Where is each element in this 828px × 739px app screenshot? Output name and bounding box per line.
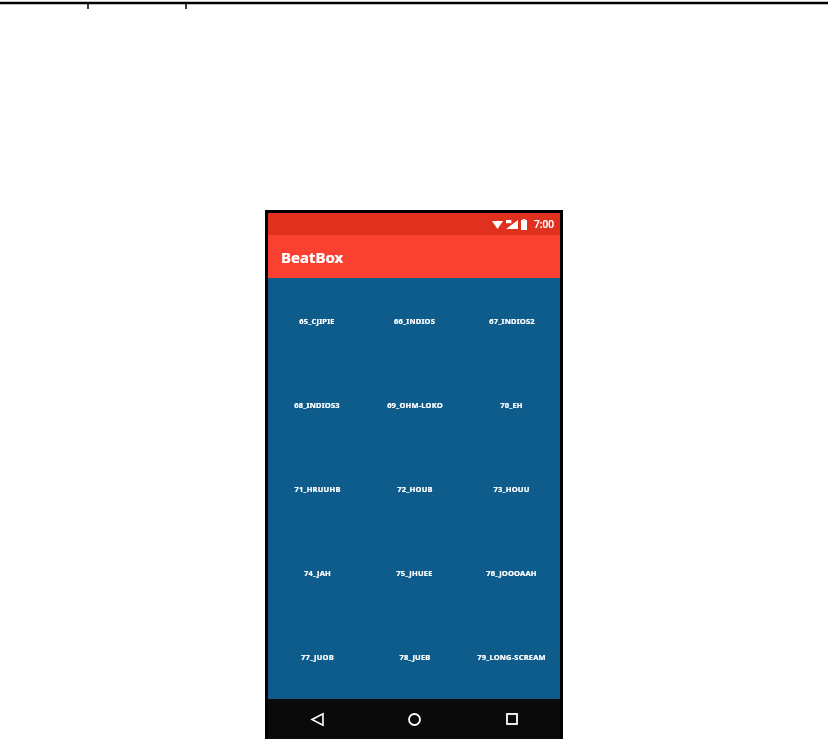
button[interactable]: 71_HRUUHB xyxy=(268,447,366,531)
button[interactable]: 67_INDIOS2 xyxy=(463,278,560,363)
staticText: 69_OHM-LOKO xyxy=(387,400,443,410)
staticText: 70_EH xyxy=(500,400,523,410)
staticText: 79_LONG-SCREAM xyxy=(477,652,546,662)
staticText: 77_JUOB xyxy=(301,652,334,662)
button[interactable]: Recent apps xyxy=(463,699,560,739)
button[interactable]: 77_JUOB xyxy=(268,615,366,699)
staticText: 66_INDIOS xyxy=(394,316,435,326)
button[interactable]: BeatBox xyxy=(268,235,560,278)
button[interactable]: Home xyxy=(366,699,463,739)
button[interactable]: 72_HOUB xyxy=(366,447,463,531)
button[interactable]: 68_INDIOS3 xyxy=(268,363,366,447)
staticText: BeatBox xyxy=(281,247,344,267)
staticText: 65_CJIPIE xyxy=(299,316,335,326)
button[interactable]: 78_JUEB xyxy=(366,615,463,699)
staticText: 72_HOUB xyxy=(397,484,433,494)
button[interactable]: 74_JAH xyxy=(268,531,366,615)
button[interactable]: 65_CJIPIE xyxy=(268,278,366,363)
button[interactable]: Back xyxy=(268,699,366,739)
staticText: 73_HOUU xyxy=(493,484,530,494)
staticText: 74_JAH xyxy=(304,568,331,578)
staticText: 68_INDIOS3 xyxy=(294,400,340,410)
staticText: 75_JHUEE xyxy=(396,568,433,578)
staticText: 76_JOOOAAH xyxy=(486,568,537,578)
staticText: 67_INDIOS2 xyxy=(489,316,535,326)
button[interactable]: 70_EH xyxy=(463,363,560,447)
button[interactable]: 73_HOUU xyxy=(463,447,560,531)
button[interactable]: 79_LONG-SCREAM xyxy=(463,615,560,699)
button[interactable]: 66_INDIOS xyxy=(366,278,463,363)
button[interactable]: 76_JOOOAAH xyxy=(463,531,560,615)
button[interactable]: 69_OHM-LOKO xyxy=(366,363,463,447)
staticText: 78_JUEB xyxy=(399,652,431,662)
staticText: 71_HRUUHB xyxy=(294,484,341,494)
staticText: 7:00 xyxy=(534,217,554,231)
button[interactable]: 75_JHUEE xyxy=(366,531,463,615)
